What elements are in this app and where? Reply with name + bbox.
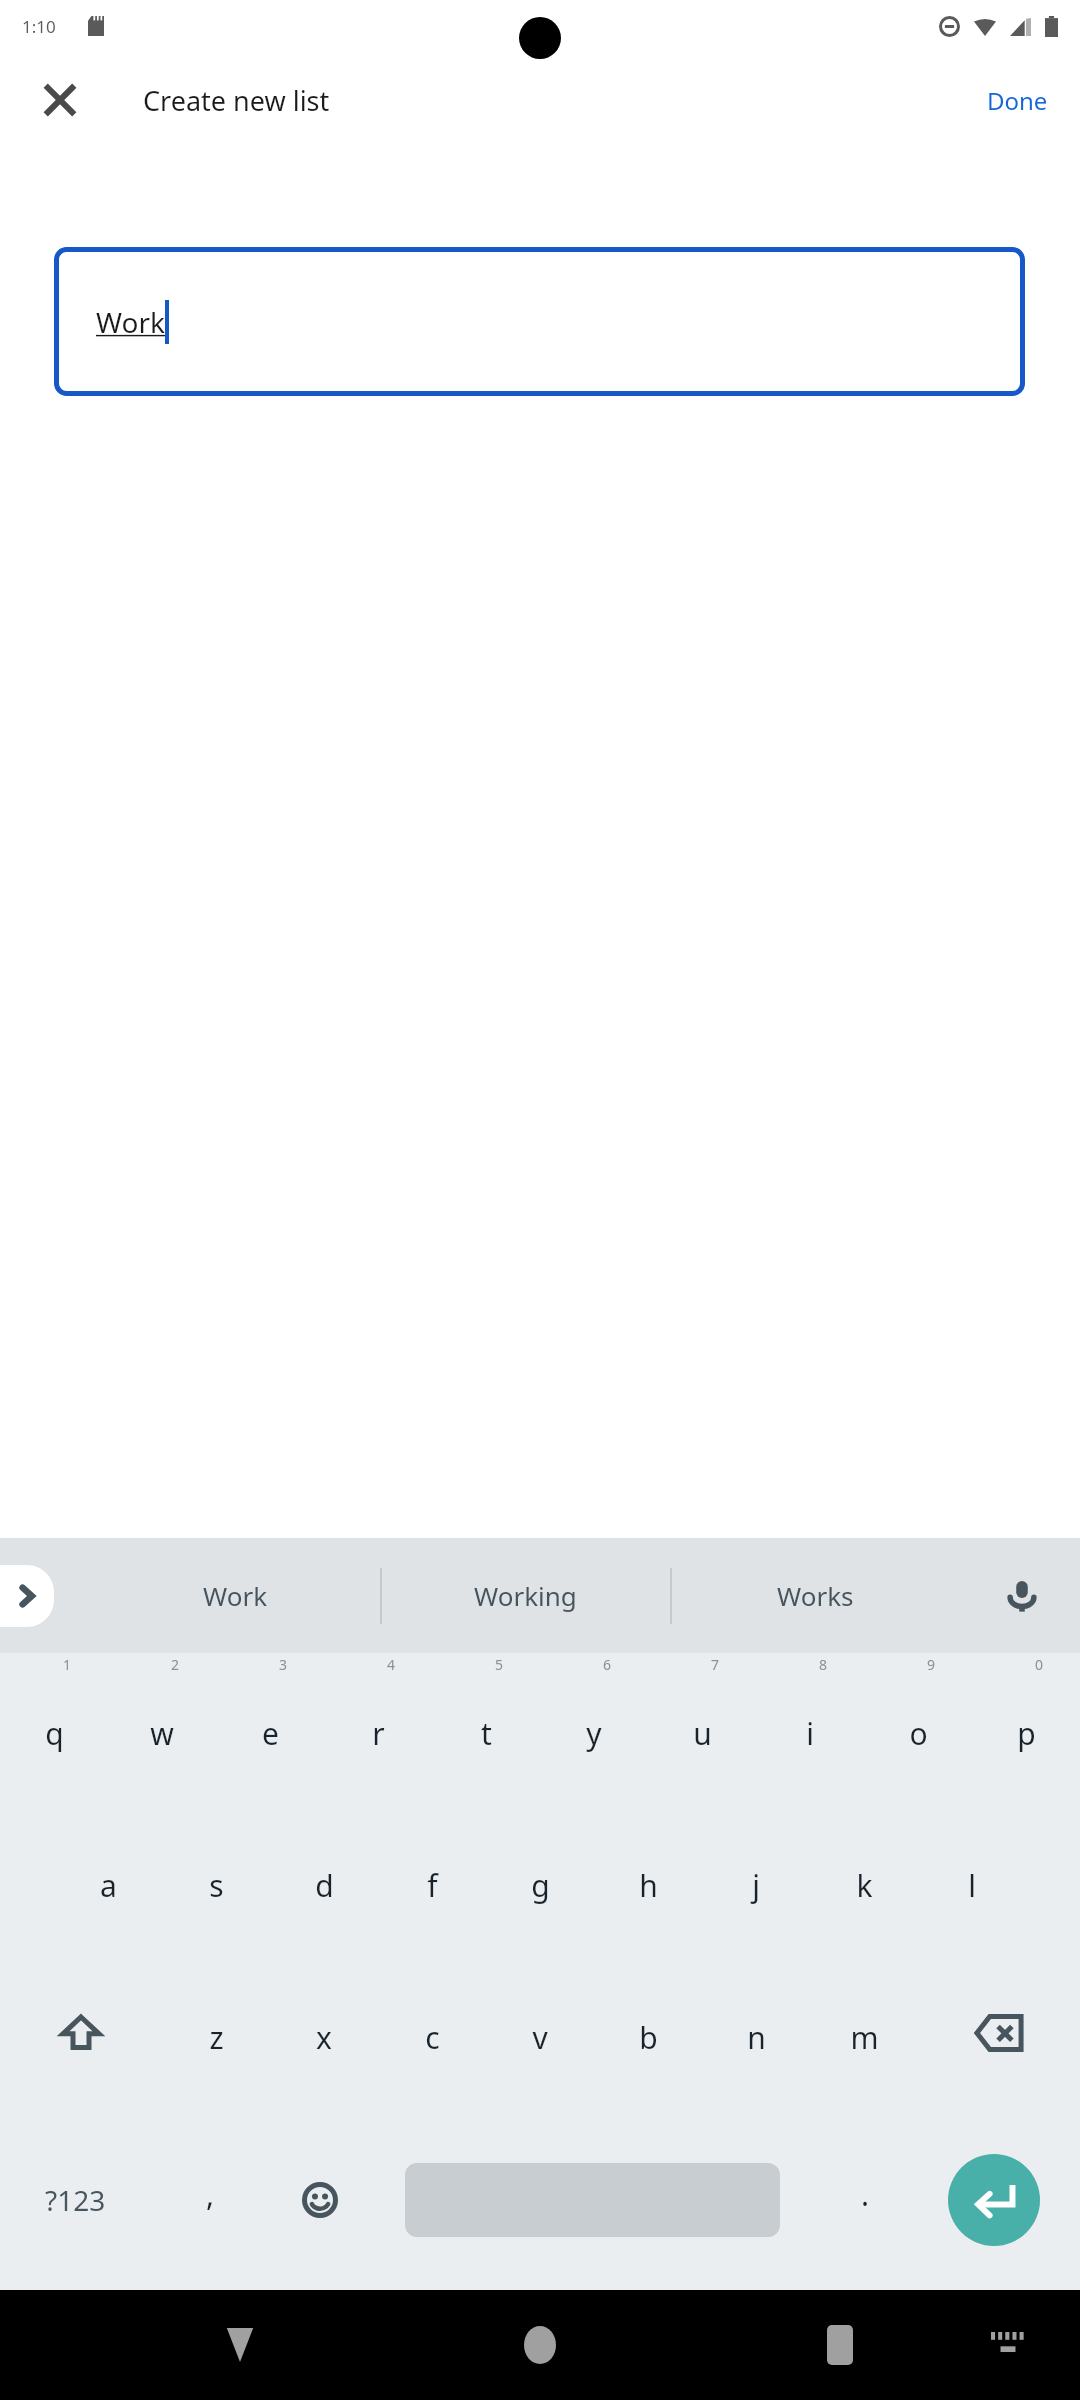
button[interactable]: Done	[971, 74, 1064, 127]
staticText: g	[531, 1865, 550, 1906]
button[interactable]: 4	[324, 1653, 432, 1805]
staticText: n	[747, 2017, 766, 2058]
button[interactable]: 1	[0, 1653, 108, 1805]
button[interactable]: Work	[54, 247, 1025, 396]
button[interactable]: d	[270, 1805, 378, 1957]
button[interactable]: n	[702, 1957, 810, 2109]
staticText: ?123	[45, 2181, 106, 2219]
staticText: m	[850, 2017, 879, 2058]
button[interactable]: Emoji	[275, 2145, 365, 2255]
button[interactable]: 7	[648, 1653, 756, 1805]
staticText: .	[861, 2174, 870, 2215]
staticText: u	[693, 1713, 712, 1754]
staticText: i	[806, 1713, 814, 1754]
staticText: h	[639, 1865, 658, 1906]
staticText: ,	[206, 2174, 215, 2215]
staticText: Create new list	[143, 82, 330, 119]
button[interactable]: Voice input	[992, 1566, 1052, 1626]
staticText: 9	[927, 1655, 936, 1674]
button[interactable]: Recents	[795, 2300, 885, 2390]
staticText: Works	[777, 1578, 854, 1613]
button[interactable]: g	[486, 1805, 594, 1957]
button[interactable]: k	[810, 1805, 918, 1957]
button[interactable]: 2	[108, 1653, 216, 1805]
staticText: Work	[96, 303, 165, 341]
button[interactable]: Close	[28, 68, 92, 132]
button[interactable]: j	[702, 1805, 810, 1957]
button[interactable]: v	[486, 1957, 594, 2109]
staticText: 4	[387, 1655, 396, 1674]
button[interactable]: Work	[90, 1538, 380, 1653]
button[interactable]: 3	[216, 1653, 324, 1805]
button[interactable]: 6	[540, 1653, 648, 1805]
staticText: v	[532, 2017, 548, 2058]
button[interactable]: 8	[756, 1653, 864, 1805]
button[interactable]: s	[162, 1805, 270, 1957]
staticText: e	[262, 1713, 279, 1754]
button[interactable]: b	[594, 1957, 702, 2109]
staticText: l	[968, 1865, 976, 1906]
staticText: f	[427, 1865, 438, 1906]
button[interactable]: Working	[380, 1538, 670, 1653]
button[interactable]: c	[378, 1957, 486, 2109]
staticText: r	[372, 1713, 385, 1754]
button[interactable]: 0	[972, 1653, 1080, 1805]
staticText: 5	[495, 1655, 504, 1674]
staticText: c	[425, 2017, 440, 2058]
button[interactable]: .	[820, 2145, 910, 2255]
staticText: d	[315, 1865, 334, 1906]
button[interactable]: z	[162, 1957, 270, 2109]
button[interactable]: Home	[495, 2300, 585, 2390]
button[interactable]: Expand suggestions	[0, 1565, 54, 1627]
button[interactable]: Works	[670, 1538, 960, 1653]
staticText: 1:10	[22, 15, 56, 38]
staticText: Working	[474, 1578, 577, 1613]
staticText: w	[150, 1713, 174, 1754]
staticText: 6	[603, 1655, 612, 1674]
staticText: t	[481, 1713, 492, 1754]
button[interactable]: m	[810, 1957, 918, 2109]
button[interactable]: 9	[864, 1653, 972, 1805]
button[interactable]: Back	[195, 2300, 285, 2390]
staticText: o	[909, 1713, 928, 1754]
staticText: s	[209, 1865, 224, 1906]
staticText: b	[639, 2017, 658, 2058]
staticText: y	[586, 1713, 602, 1754]
staticText: Work	[203, 1578, 268, 1613]
button[interactable]: h	[594, 1805, 702, 1957]
staticText: p	[1017, 1713, 1036, 1754]
staticText: a	[100, 1865, 117, 1906]
button[interactable]: 5	[432, 1653, 540, 1805]
staticText: z	[209, 2017, 224, 2058]
staticText: 0	[1035, 1655, 1044, 1674]
button[interactable]: x	[270, 1957, 378, 2109]
button[interactable]: Switch keyboard	[968, 2305, 1048, 2385]
button[interactable]: f	[378, 1805, 486, 1957]
button[interactable]: Backspace	[918, 1957, 1080, 2109]
button[interactable]: l	[918, 1805, 1026, 1957]
staticText: 2	[171, 1655, 180, 1674]
button[interactable]: ,	[165, 2145, 255, 2255]
staticText: 1	[63, 1655, 72, 1674]
button[interactable]: ?123	[10, 2145, 140, 2255]
staticText: 8	[819, 1655, 828, 1674]
button[interactable]: Shift	[0, 1957, 162, 2109]
staticText: Done	[987, 84, 1048, 117]
button[interactable]: a	[54, 1805, 162, 1957]
staticText: x	[316, 2017, 332, 2058]
staticText: j	[752, 1865, 760, 1906]
staticText: 7	[711, 1655, 720, 1674]
button[interactable]: Enter	[948, 2154, 1040, 2246]
staticText: k	[856, 1865, 873, 1906]
staticText: q	[45, 1713, 64, 1754]
staticText: 3	[279, 1655, 288, 1674]
